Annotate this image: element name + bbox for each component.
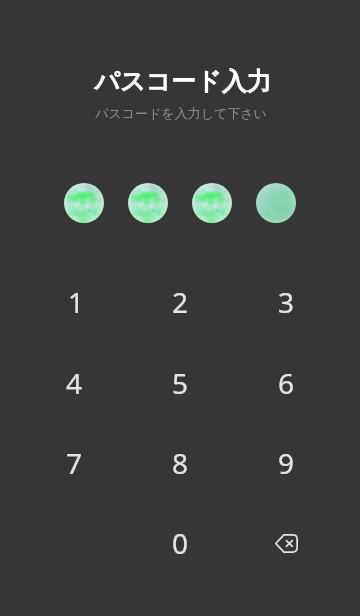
- other: Backspace: [275, 534, 298, 553]
- staticText: 7: [66, 444, 83, 482]
- staticText: 8: [172, 444, 189, 482]
- button[interactable]: Backspace: [246, 507, 326, 579]
- button[interactable]: 2: [140, 266, 220, 338]
- staticText: パスコード入力: [3, 66, 360, 97]
- button[interactable]: 7: [34, 427, 114, 499]
- staticText: 4: [66, 364, 83, 402]
- staticText: 2: [172, 283, 189, 321]
- staticText: 3: [278, 283, 295, 321]
- button[interactable]: 9: [246, 427, 326, 499]
- staticText: 0: [172, 524, 189, 562]
- button[interactable]: 8: [140, 427, 220, 499]
- button[interactable]: 1: [36, 266, 116, 338]
- button[interactable]: 3: [246, 266, 326, 338]
- button[interactable]: 6: [246, 347, 326, 419]
- staticText: パスコードを入力して下さい: [1, 105, 360, 121]
- button[interactable]: 5: [140, 347, 220, 419]
- staticText: 6: [278, 364, 295, 402]
- staticText: 5: [172, 364, 189, 402]
- button[interactable]: 4: [34, 347, 114, 419]
- staticText: 1: [68, 283, 85, 321]
- button[interactable]: 0: [140, 507, 220, 579]
- staticText: 9: [278, 444, 295, 482]
